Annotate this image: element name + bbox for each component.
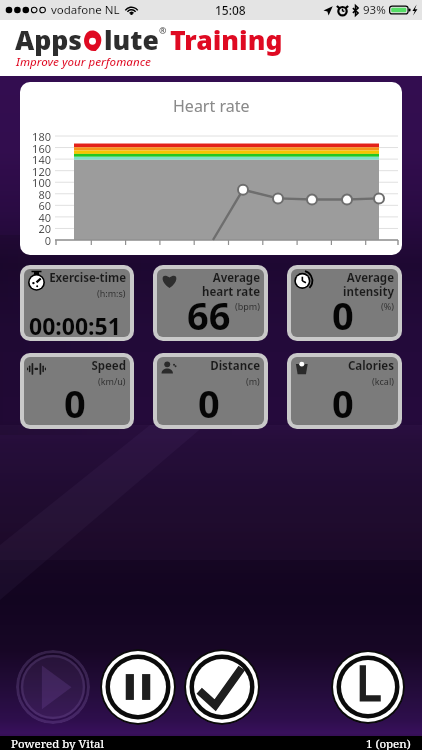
button[interactable]: Play [16, 650, 90, 724]
staticText: 0 [332, 289, 354, 337]
staticText: Heart rate [173, 95, 250, 117]
staticText: 93% [363, 2, 386, 18]
button[interactable]: Distance [157, 357, 264, 425]
staticText: 00:00:51 [29, 310, 121, 337]
staticText: (m) [246, 375, 260, 387]
staticText: Average heart rate [201, 270, 260, 299]
button[interactable]: Exercise-time [24, 269, 130, 337]
staticText: Training [170, 22, 283, 58]
staticText: 100 [23, 175, 51, 190]
staticText: Average intensity [342, 270, 394, 299]
staticText: 180 [23, 129, 51, 144]
button[interactable]: Pause [100, 649, 176, 725]
staticText: (%) [381, 300, 394, 312]
staticText: Apps [15, 22, 83, 58]
staticText: 1 (open) [366, 736, 411, 750]
staticText: 15:08 [215, 2, 246, 18]
staticText: 80 [23, 187, 51, 202]
staticText: 40 [23, 210, 51, 225]
button[interactable]: Speed [24, 357, 130, 425]
staticText: 120 [23, 164, 51, 179]
staticText: 140 [23, 152, 51, 167]
staticText: Speed [91, 358, 126, 374]
button[interactable]: Calories [291, 357, 398, 425]
staticText: (km/u) [98, 375, 126, 387]
staticText: 0 [64, 377, 86, 425]
staticText: Improve your perfomance [16, 54, 151, 70]
button[interactable]: Average intensity [291, 269, 398, 337]
staticText: 160 [23, 141, 51, 156]
staticText: 60 [23, 198, 51, 213]
staticText: Powered by Vital [11, 736, 105, 750]
staticText: 66 [187, 289, 231, 337]
staticText: Exercise-time [49, 270, 126, 286]
button[interactable]: Lap [331, 650, 405, 724]
button[interactable]: Finish [184, 649, 260, 725]
staticText: 0 [198, 377, 220, 425]
staticText: vodafone NL [51, 2, 120, 18]
staticText: Distance [210, 358, 260, 374]
staticText: (bpm) [235, 300, 260, 312]
staticText: (h:m:s) [97, 287, 126, 299]
staticText: ® [159, 24, 167, 36]
button[interactable]: Average heart rate [157, 269, 264, 337]
staticText: 0 [23, 233, 51, 248]
staticText: 0 [332, 377, 354, 425]
staticText: Calories [347, 358, 394, 374]
staticText: 20 [23, 221, 51, 236]
staticText: (kcal) [372, 375, 394, 387]
staticText: lute [104, 22, 159, 58]
